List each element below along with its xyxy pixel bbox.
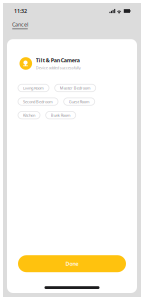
staticText: Kitchen xyxy=(23,112,35,118)
staticText: Done xyxy=(65,260,78,267)
staticText: Bunk Room xyxy=(51,112,71,118)
staticText: Master Bedroom xyxy=(60,85,91,91)
button[interactable]: Living Room xyxy=(18,84,49,92)
staticText: 11:32 xyxy=(14,7,27,15)
staticText: Second Bedroom xyxy=(23,99,53,104)
button[interactable]: Second Bedroom xyxy=(18,98,58,105)
staticText: Tilt & Pan Camera xyxy=(36,57,80,64)
staticText: Device added successfully xyxy=(36,65,81,70)
button[interactable]: Guest Room xyxy=(64,98,95,105)
button[interactable]: Done xyxy=(18,255,126,272)
button[interactable]: Cancel xyxy=(10,19,30,31)
button[interactable]: Bunk Room xyxy=(46,111,76,119)
staticText: Cancel xyxy=(12,21,28,28)
button[interactable]: Kitchen xyxy=(18,111,40,119)
button[interactable]: Master Bedroom xyxy=(55,84,96,92)
staticText: Guest Room xyxy=(69,99,90,104)
staticText: Living Room xyxy=(23,85,44,91)
